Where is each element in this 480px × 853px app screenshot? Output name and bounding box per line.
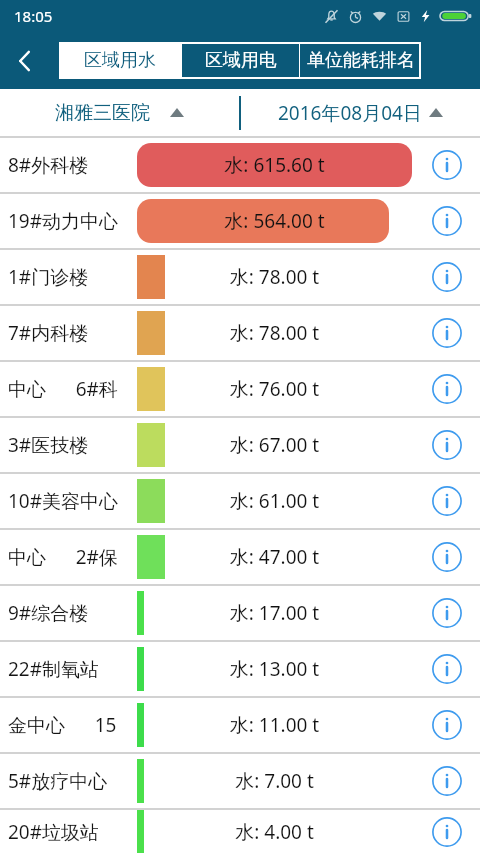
- button[interactable]: 2016年08月04日: [241, 89, 480, 136]
- button[interactable]: 8#外科楼: [0, 138, 480, 192]
- button[interactable]: Info: [428, 650, 466, 688]
- button[interactable]: 10#美容中心: [0, 474, 480, 528]
- button[interactable]: 中心 6#科: [0, 362, 480, 416]
- button[interactable]: Info: [428, 762, 466, 800]
- staticText: 金中心 15: [8, 712, 140, 738]
- button[interactable]: 19#动力中心: [0, 194, 480, 248]
- button[interactable]: 湘雅三医院: [0, 89, 239, 136]
- button[interactable]: Info: [428, 370, 466, 408]
- staticText: 湘雅三医院: [55, 101, 150, 125]
- button[interactable]: Info: [428, 258, 466, 296]
- staticText: 20#垃圾站: [8, 819, 140, 845]
- staticText: 区域用水: [84, 49, 156, 72]
- staticText: 水: 615.60 t: [137, 152, 412, 178]
- button[interactable]: 9#综合楼: [0, 586, 480, 640]
- button[interactable]: 单位能耗排名: [300, 42, 421, 79]
- staticText: 水: 61.00 t: [137, 488, 412, 514]
- button[interactable]: 区域用电: [182, 42, 299, 79]
- button[interactable]: Info: [428, 202, 466, 240]
- staticText: 水: 13.00 t: [137, 656, 412, 682]
- button[interactable]: 22#制氧站: [0, 642, 480, 696]
- button[interactable]: 5#放疗中心: [0, 754, 480, 808]
- button[interactable]: Info: [428, 146, 466, 184]
- staticText: 水: 11.00 t: [137, 712, 412, 738]
- staticText: 中心 6#科: [8, 376, 140, 402]
- button[interactable]: Back: [0, 36, 50, 86]
- staticText: 单位能耗排名: [307, 49, 415, 72]
- staticText: 水: 47.00 t: [137, 544, 412, 570]
- button[interactable]: 金中心 15: [0, 698, 480, 752]
- button[interactable]: 1#门诊楼: [0, 250, 480, 304]
- staticText: 3#医技楼: [8, 432, 140, 458]
- staticText: 水: 76.00 t: [137, 376, 412, 402]
- staticText: 水: 67.00 t: [137, 432, 412, 458]
- button[interactable]: Info: [428, 538, 466, 576]
- staticText: 中心 2#保: [8, 544, 140, 570]
- button[interactable]: 3#医技楼: [0, 418, 480, 472]
- button[interactable]: 20#垃圾站: [0, 810, 480, 853]
- button[interactable]: Info: [428, 813, 466, 851]
- staticText: 22#制氧站: [8, 656, 140, 682]
- staticText: 1#门诊楼: [8, 264, 140, 290]
- button[interactable]: 7#内科楼: [0, 306, 480, 360]
- button[interactable]: Info: [428, 706, 466, 744]
- staticText: 18:05: [14, 6, 53, 26]
- staticText: 9#综合楼: [8, 600, 140, 626]
- staticText: 水: 78.00 t: [137, 320, 412, 346]
- button[interactable]: Info: [428, 482, 466, 520]
- button[interactable]: Info: [428, 314, 466, 352]
- staticText: 水: 7.00 t: [137, 768, 412, 794]
- button[interactable]: Info: [428, 594, 466, 632]
- staticText: 19#动力中心: [8, 208, 140, 234]
- staticText: 水: 564.00 t: [137, 208, 412, 234]
- button[interactable]: 区域用水: [59, 42, 181, 79]
- staticText: 2016年08月04日: [278, 100, 422, 126]
- staticText: 水: 4.00 t: [137, 819, 412, 845]
- staticText: 区域用电: [205, 49, 277, 72]
- staticText: 水: 78.00 t: [137, 264, 412, 290]
- staticText: 10#美容中心: [8, 488, 140, 514]
- button[interactable]: Info: [428, 426, 466, 464]
- staticText: 水: 17.00 t: [137, 600, 412, 626]
- staticText: 8#外科楼: [8, 152, 140, 178]
- button[interactable]: 中心 2#保: [0, 530, 480, 584]
- staticText: 5#放疗中心: [8, 768, 140, 794]
- staticText: 7#内科楼: [8, 320, 140, 346]
